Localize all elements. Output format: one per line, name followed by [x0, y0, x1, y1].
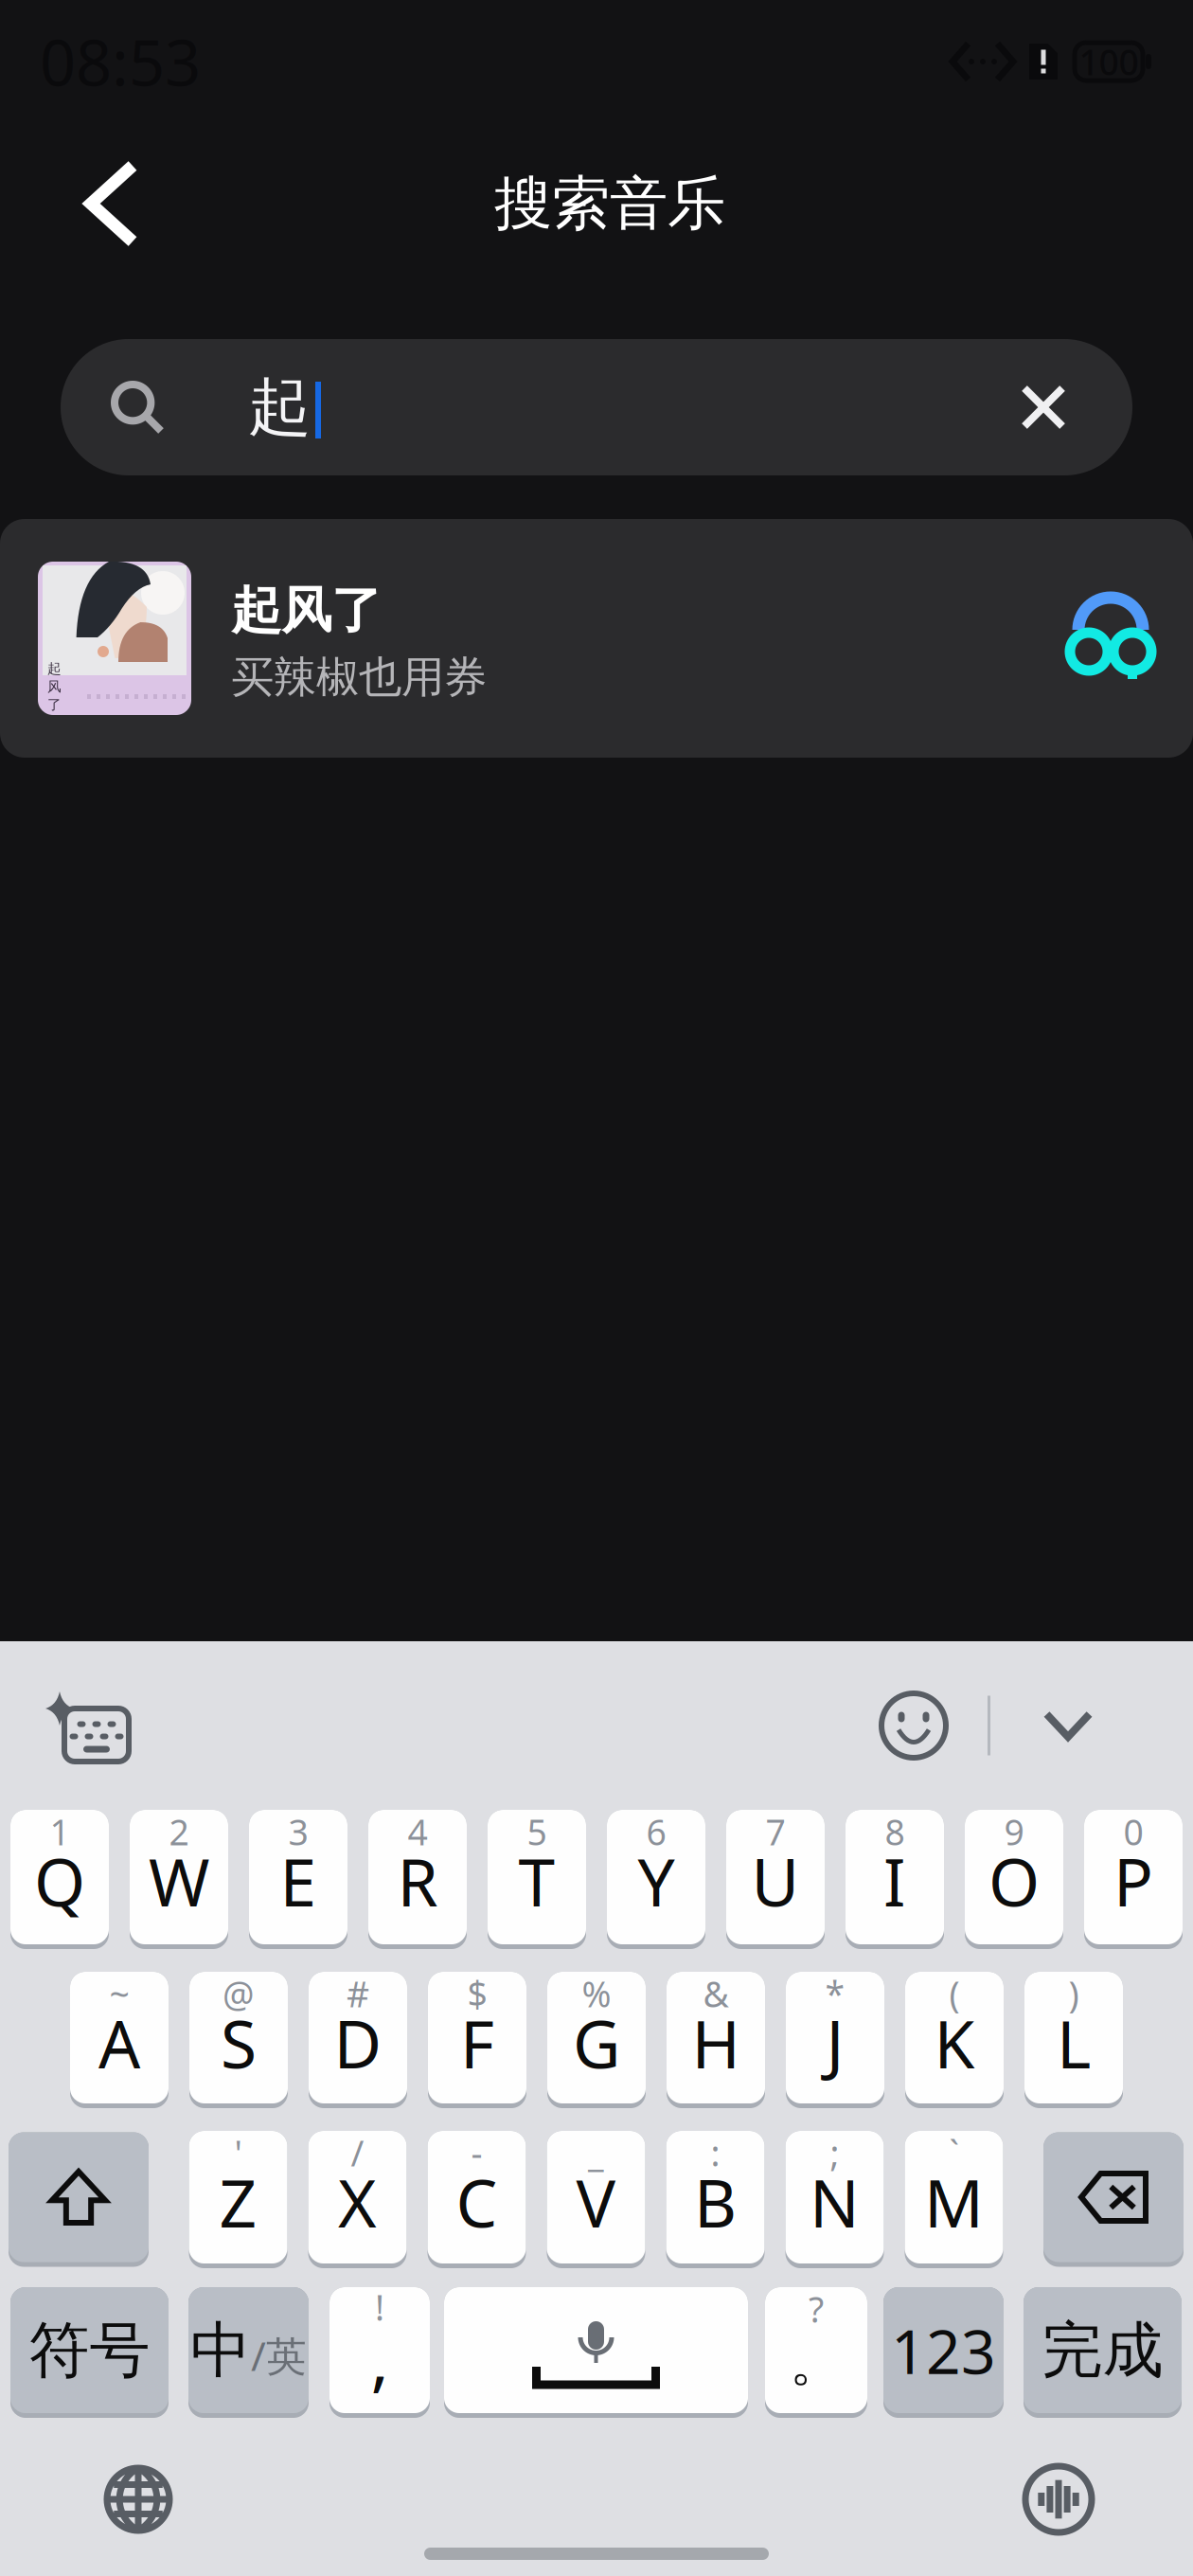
- staticText: 起: [47, 660, 62, 677]
- staticText: ': [234, 2129, 242, 2176]
- staticText: R: [397, 1837, 438, 1925]
- staticText: H: [692, 1999, 740, 2086]
- button[interactable]: $: [428, 1972, 526, 2108]
- staticText: %: [582, 1970, 611, 2017]
- staticText: 5: [527, 1808, 547, 1855]
- button[interactable]: 123: [883, 2287, 1004, 2418]
- staticText: 买辣椒也用券: [231, 651, 487, 704]
- staticText: 2: [169, 1808, 189, 1855]
- staticText: 6: [646, 1808, 666, 1855]
- staticText: K: [934, 1999, 975, 2086]
- staticText: 4: [408, 1808, 427, 1855]
- staticText: M: [924, 2158, 984, 2246]
- staticText: /: [351, 2129, 364, 2176]
- button[interactable]: 0: [1084, 1810, 1183, 1949]
- button[interactable]: Space: [444, 2287, 748, 2418]
- button[interactable]: ~: [70, 1972, 169, 2108]
- button[interactable]: 符号: [10, 2287, 169, 2418]
- button[interactable]: Switch keyboard: [91, 2452, 186, 2547]
- staticText: Q: [34, 1837, 85, 1925]
- button[interactable]: 6: [607, 1810, 705, 1949]
- staticText: E: [280, 1837, 317, 1925]
- staticText: 中: [190, 2313, 251, 2388]
- staticText: *: [825, 1970, 845, 2017]
- staticText: I: [883, 1837, 906, 1925]
- staticText: @: [223, 1970, 255, 2017]
- button[interactable]: 完成: [1024, 2287, 1182, 2418]
- button[interactable]: !: [329, 2287, 430, 2418]
- staticText: !: [375, 2284, 384, 2331]
- button[interactable]: %: [547, 1972, 646, 2108]
- button[interactable]: /: [308, 2131, 407, 2268]
- staticText: O: [988, 1837, 1040, 1925]
- button[interactable]: 2: [130, 1810, 228, 1949]
- button[interactable]: ): [1024, 1972, 1123, 2108]
- staticText: J: [826, 1999, 844, 2086]
- staticText: B: [694, 2158, 737, 2246]
- staticText: 起: [248, 369, 312, 446]
- button[interactable]: Shift: [9, 2132, 149, 2267]
- staticText: ;: [830, 2129, 839, 2176]
- staticText: :: [711, 2129, 720, 2176]
- button[interactable]: 8: [846, 1810, 944, 1949]
- staticText: /英: [251, 2329, 307, 2382]
- button[interactable]: #: [309, 1972, 407, 2108]
- staticText: 0: [1123, 1808, 1143, 1855]
- staticText: (: [949, 1970, 960, 2017]
- button[interactable]: 9: [965, 1810, 1063, 1949]
- staticText: $: [467, 1970, 487, 2017]
- button[interactable]: Keyboard settings: [34, 1673, 138, 1778]
- staticText: 搜索音乐: [494, 168, 725, 239]
- staticText: 符号: [29, 2313, 150, 2388]
- button[interactable]: ?: [765, 2287, 867, 2418]
- button[interactable]: *: [786, 1972, 884, 2108]
- button[interactable]: ': [189, 2131, 287, 2268]
- button[interactable]: 中: [188, 2287, 309, 2418]
- button[interactable]: Clear: [990, 354, 1096, 460]
- button[interactable]: Emoji: [866, 1678, 961, 1773]
- button[interactable]: Voice input: [1011, 2452, 1106, 2547]
- button[interactable]: &: [667, 1972, 765, 2108]
- button[interactable]: Back: [45, 137, 178, 270]
- button[interactable]: 4: [368, 1810, 467, 1949]
- staticText: 起风了: [231, 580, 382, 642]
- button[interactable]: 1: [10, 1810, 109, 1949]
- staticText: C: [456, 2158, 498, 2246]
- staticText: N: [810, 2158, 860, 2246]
- button[interactable]: 起: [0, 519, 1193, 758]
- staticText: 风: [47, 678, 62, 695]
- staticText: 1: [50, 1808, 70, 1855]
- staticText: W: [149, 1837, 209, 1925]
- staticText: `: [949, 2129, 959, 2176]
- staticText: Y: [638, 1837, 675, 1925]
- staticText: &: [703, 1970, 729, 2017]
- button[interactable]: _: [547, 2131, 645, 2268]
- staticText: U: [751, 1837, 800, 1925]
- button[interactable]: Dismiss keyboard: [1021, 1678, 1115, 1773]
- staticText: S: [221, 1999, 257, 2086]
- staticText: 完成: [1042, 2313, 1163, 2388]
- button[interactable]: 3: [249, 1810, 347, 1949]
- button[interactable]: 7: [726, 1810, 825, 1949]
- staticText: ?: [809, 2285, 824, 2332]
- button[interactable]: @: [189, 1972, 288, 2108]
- button[interactable]: 5: [488, 1810, 586, 1949]
- staticText: _: [588, 2129, 604, 2176]
- staticText: L: [1057, 1999, 1091, 2086]
- staticText: 8: [885, 1808, 905, 1855]
- button[interactable]: Delete: [1043, 2132, 1184, 2267]
- button[interactable]: `: [905, 2131, 1003, 2268]
- staticText: T: [518, 1837, 555, 1925]
- staticText: ): [1068, 1970, 1079, 2017]
- button[interactable]: (: [905, 1972, 1004, 2108]
- staticText: 123: [891, 2310, 996, 2391]
- button[interactable]: :: [666, 2131, 765, 2268]
- button[interactable]: -: [427, 2131, 526, 2268]
- staticText: F: [460, 1999, 494, 2086]
- staticText: 100: [1079, 38, 1139, 85]
- button[interactable]: ;: [785, 2131, 884, 2268]
- staticText: -: [471, 2129, 482, 2176]
- staticText: 3: [288, 1808, 308, 1855]
- staticText: G: [573, 1999, 620, 2086]
